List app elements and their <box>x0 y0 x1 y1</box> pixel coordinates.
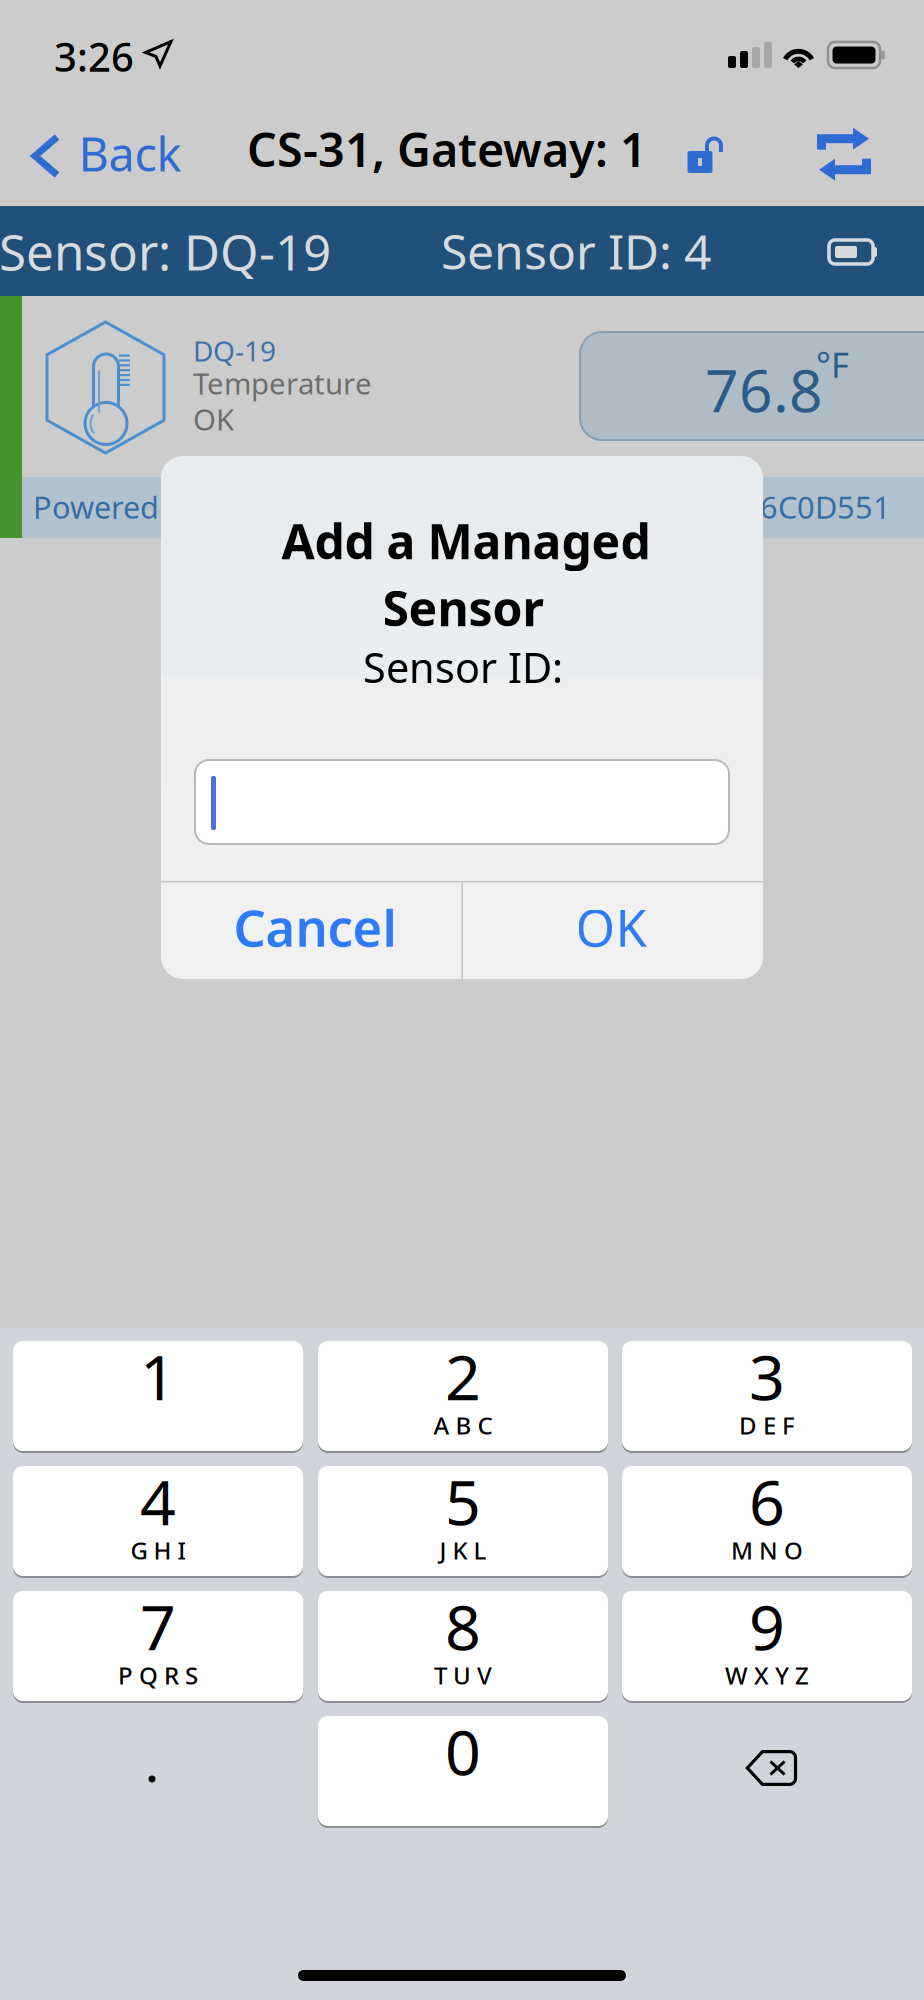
staticText: Add a Managed <box>281 509 650 573</box>
staticText: G H I <box>130 1534 185 1566</box>
staticText: A B C <box>433 1409 492 1441</box>
staticText: 76.8 <box>705 350 823 428</box>
button[interactable]: 5 <box>318 1466 608 1576</box>
staticText: M N O <box>731 1534 803 1566</box>
staticText: Powered <box>33 487 159 527</box>
staticText: 0 <box>445 1709 481 1793</box>
button[interactable]: 4 <box>13 1466 303 1576</box>
button[interactable]: Cancel <box>161 882 461 979</box>
staticText: 4 <box>140 1459 176 1543</box>
button[interactable]: OK <box>463 882 763 979</box>
staticText: OK <box>193 399 234 438</box>
staticText: J K L <box>439 1534 486 1566</box>
staticText: 5 <box>445 1459 481 1543</box>
staticText: Back <box>78 122 181 184</box>
staticText: W X Y Z <box>725 1659 809 1691</box>
staticText: Temperature <box>193 363 372 402</box>
button[interactable]: 2 <box>318 1341 608 1451</box>
staticText: Cancel <box>233 893 396 961</box>
button[interactable]: 3 <box>622 1341 912 1451</box>
button[interactable]: 6 <box>622 1466 912 1576</box>
staticText: T U V <box>434 1659 492 1691</box>
staticText: 3 <box>749 1334 785 1418</box>
staticText: 7 <box>140 1584 176 1668</box>
staticText: 6 <box>749 1459 785 1543</box>
button[interactable]: Decimal point <box>13 1716 303 1826</box>
staticText: Sensor ID: <box>363 639 563 694</box>
staticText: °F <box>816 341 849 387</box>
staticText: Sensor: DQ-19 <box>0 218 331 284</box>
staticText: D E F <box>739 1409 795 1441</box>
staticText: P Q R S <box>118 1659 198 1691</box>
staticText: DQ-19 <box>193 332 276 369</box>
button[interactable]: 7 <box>13 1591 303 1701</box>
button[interactable]: 8 <box>318 1591 608 1701</box>
staticText: 6C0D551 <box>760 487 891 527</box>
button[interactable]: 9 <box>622 1591 912 1701</box>
staticText: OK <box>575 893 646 961</box>
staticText: 9 <box>749 1584 785 1668</box>
button[interactable]: Sync <box>804 111 884 199</box>
button[interactable]: Unlock <box>669 111 741 199</box>
staticText: 1 <box>140 1334 176 1418</box>
button[interactable]: DQ-19 <box>0 296 924 538</box>
staticText: 2 <box>445 1334 481 1418</box>
button[interactable]: 1 <box>13 1341 303 1451</box>
button[interactable]: 0 <box>318 1716 608 1826</box>
button[interactable]: Back <box>2 111 182 199</box>
staticText: Sensor ID: 4 <box>441 219 711 283</box>
button[interactable]: Delete <box>622 1716 912 1826</box>
staticText: 3:26 <box>54 29 134 83</box>
staticText: Sensor <box>382 576 543 640</box>
staticText: CS-31, Gateway: 1 <box>247 118 647 180</box>
staticText: 8 <box>445 1584 481 1668</box>
